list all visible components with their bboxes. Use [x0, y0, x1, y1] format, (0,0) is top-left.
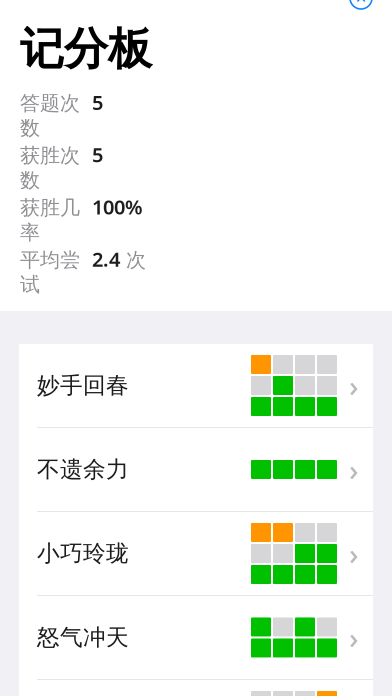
button[interactable]: 怒气冲天 — [19, 596, 373, 680]
staticText: 平均尝试 — [20, 248, 80, 297]
staticText: ✕ — [355, 0, 367, 6]
staticText: 记分板 — [20, 22, 152, 76]
staticText: 小巧玲珑 — [37, 540, 129, 567]
staticText: 2.4 — [92, 246, 120, 272]
staticText: 妙手回春 — [37, 372, 129, 399]
staticText: 答题次数 — [20, 91, 80, 140]
staticText: 获胜几率 — [20, 196, 80, 245]
staticText: 怒气冲天 — [37, 624, 129, 651]
button[interactable]: 画蛇添足 — [19, 680, 373, 696]
staticText: 100% — [92, 193, 143, 220]
staticText: › — [349, 534, 359, 573]
button[interactable]: 妙手回春 — [19, 344, 373, 428]
staticText: 5 — [92, 141, 103, 168]
staticText: 不遗余力 — [37, 456, 129, 483]
staticText: 5 — [92, 89, 103, 116]
button[interactable]: 不遗余力 — [19, 428, 373, 512]
staticText: › — [349, 618, 359, 657]
button[interactable]: 关闭 — [339, 0, 383, 20]
button[interactable]: 小巧玲珑 — [19, 512, 373, 596]
staticText: › — [349, 366, 359, 405]
staticText: › — [349, 450, 359, 489]
staticText: 次 — [126, 248, 146, 272]
staticText: 获胜次数 — [20, 143, 80, 192]
